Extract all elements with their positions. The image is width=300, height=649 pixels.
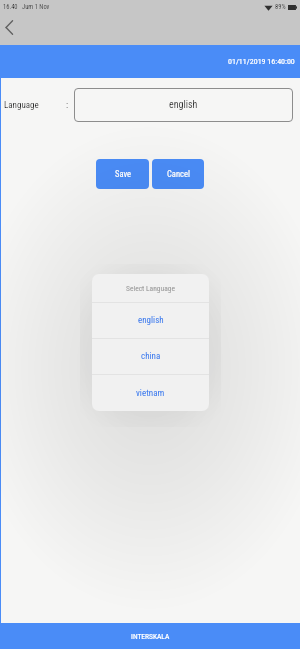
staticText: 16.40 [3,3,18,11]
staticText: Language [4,100,39,111]
button[interactable]: vietnam [92,375,209,411]
staticText: INTERSKALA [131,632,170,641]
button[interactable]: Cancel [152,159,204,189]
staticText: 01/11/2019 16:40:00 [228,57,295,66]
staticText: china [141,351,161,362]
staticText: english [169,99,198,111]
staticText: : [66,100,69,111]
staticText: english [138,315,164,326]
button[interactable]: english [92,303,209,338]
staticText: Cancel [167,169,190,179]
staticText: Select Language [126,284,175,293]
button[interactable]: Save [96,159,149,189]
button[interactable]: english [74,88,293,122]
button[interactable]: china [92,339,209,374]
staticText: Jum 1 Nov [22,3,50,11]
staticText: vietnam [136,388,165,399]
staticText: Save [115,169,131,179]
button[interactable]: Back [0,16,19,38]
staticText: 89% [275,3,286,11]
